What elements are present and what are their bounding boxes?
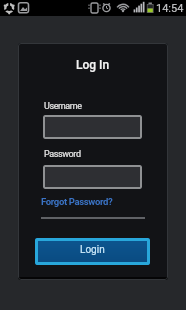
button[interactable] [43,165,142,189]
staticText: 14:54 [156,2,184,15]
button[interactable]: Forgot Password? [41,196,113,207]
button[interactable] [43,115,142,139]
staticText: Log In [76,58,110,72]
staticText: Password [44,149,81,160]
staticText: Username [44,101,82,112]
staticText: Forgot Password? [41,196,113,207]
button[interactable]: Login [35,238,150,265]
staticText: Login [80,244,105,256]
